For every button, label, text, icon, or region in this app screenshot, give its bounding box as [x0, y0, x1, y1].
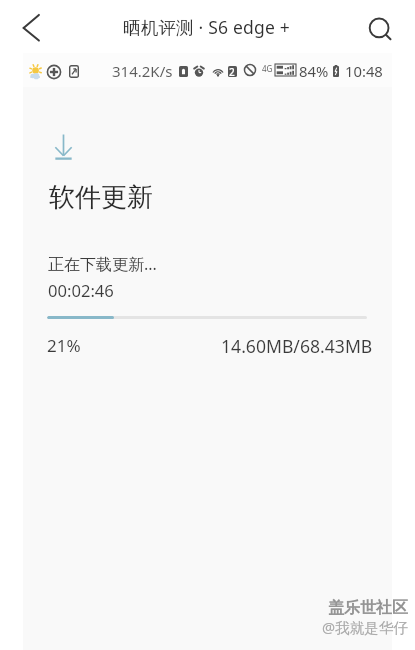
staticText: 84% — [299, 61, 329, 81]
staticText: 10:48 — [345, 61, 383, 81]
staticText: 盖乐世社区 — [328, 598, 408, 618]
staticText: 314.2K/s — [112, 61, 173, 81]
staticText: 4G — [262, 63, 273, 74]
button[interactable]: Back — [6, 6, 48, 48]
button[interactable]: Search — [358, 6, 400, 48]
staticText: 21% — [47, 334, 81, 357]
button[interactable]: 晒机评测 · S6 edge + — [123, 15, 290, 39]
staticText: 软件更新 — [49, 181, 153, 214]
staticText: 正在下载更新... — [48, 253, 157, 275]
staticText: 2 — [229, 65, 235, 79]
staticText: @我就是华仔 — [322, 617, 409, 637]
staticText: 00:02:46 — [48, 279, 114, 302]
staticText: 14.60MB/68.43MB — [221, 334, 373, 358]
button[interactable]: 软件更新截图 — [23, 53, 392, 650]
